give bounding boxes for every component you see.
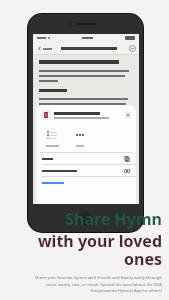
button[interactable]: Close [39,108,133,122]
button[interactable] [35,44,54,53]
staticText: Share your favorite hymns with friends a… [7,275,162,293]
button[interactable] [36,177,136,188]
button[interactable] [36,153,136,164]
staticText: Share Hymn [7,208,162,230]
button[interactable]: Close [125,112,131,118]
staticText: with your loved ones [7,230,162,270]
button[interactable]: Reminders [43,126,61,148]
button[interactable]: More [71,126,89,148]
button[interactable]: More options [129,45,136,52]
button[interactable] [36,165,136,176]
